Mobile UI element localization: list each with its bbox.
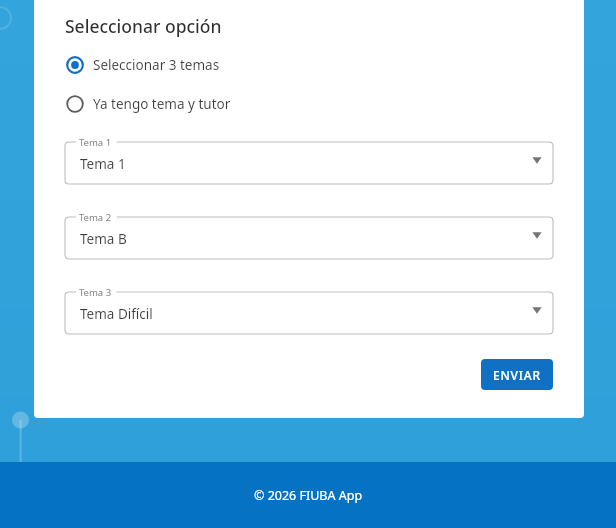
staticText: Seleccionar 3 temas [93, 56, 220, 74]
staticText: Tema 1 [80, 155, 126, 173]
staticText: ENVIAR [493, 367, 541, 383]
staticText: Tema Difícil [80, 305, 153, 323]
button[interactable]: Seleccionar 3 temas [65, 52, 553, 78]
button[interactable]: ENVIAR [481, 359, 553, 390]
button[interactable]: Tema 2 [65, 210, 553, 259]
staticText: Tema 3 [79, 286, 112, 299]
button[interactable]: Tema 1 [65, 135, 553, 184]
staticText: Tema 1 [79, 136, 112, 149]
staticText: © 2026 FIUBA App [254, 487, 363, 504]
staticText: Tema B [80, 230, 127, 248]
staticText: Seleccionar opción [65, 14, 222, 38]
button[interactable]: Ya tengo tema y tutor [65, 91, 553, 117]
staticText: Tema 2 [79, 211, 112, 224]
button[interactable]: Tema 3 [65, 285, 553, 334]
staticText: Ya tengo tema y tutor [93, 95, 231, 113]
